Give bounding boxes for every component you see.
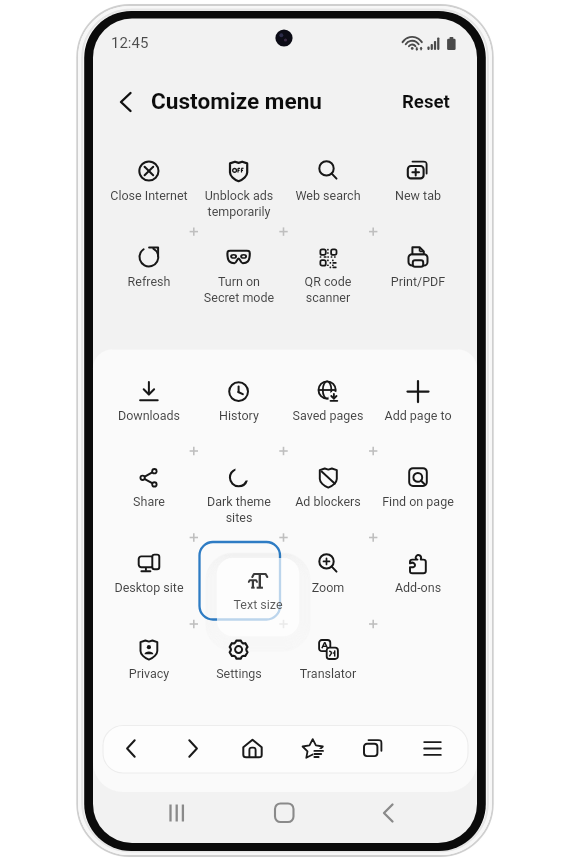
staticText: Refresh xyxy=(103,274,195,289)
button[interactable]: QR code scanner xyxy=(284,231,372,317)
staticText: Add page to xyxy=(372,408,464,423)
staticText: Add-ons xyxy=(372,580,464,595)
button[interactable]: Settings xyxy=(195,624,283,710)
button[interactable]: Translator xyxy=(284,624,372,710)
button[interactable]: Forward xyxy=(171,726,215,771)
button[interactable]: Recent apps xyxy=(152,791,196,835)
button[interactable]: Print/PDF xyxy=(374,231,462,317)
button[interactable]: Reset xyxy=(393,84,459,120)
button[interactable]: Dark theme sites xyxy=(195,452,283,538)
staticText: 12:45 xyxy=(111,34,149,52)
button[interactable]: Home xyxy=(231,726,275,771)
button[interactable]: Bookmarks xyxy=(291,726,335,771)
button[interactable]: More options xyxy=(411,726,455,771)
staticText: Settings xyxy=(193,666,285,681)
staticText: Saved pages xyxy=(282,408,374,423)
button[interactable]: Zoom xyxy=(284,538,372,624)
button[interactable]: History xyxy=(195,366,283,452)
button[interactable]: Share xyxy=(105,452,193,538)
staticText: Turn on Secret mode xyxy=(193,274,285,305)
button[interactable]: Find on page xyxy=(374,452,462,538)
button[interactable]: Close Internet xyxy=(105,145,193,231)
staticText: Downloads xyxy=(103,408,195,423)
staticText: Text size xyxy=(212,597,304,612)
button[interactable]: New tab xyxy=(374,145,462,231)
button[interactable]: Desktop site xyxy=(105,538,193,624)
button[interactable]: Unblock ads temporarily xyxy=(195,145,283,231)
staticText: Find on page xyxy=(372,494,464,509)
staticText: QR code scanner xyxy=(282,274,374,305)
button[interactable]: Home xyxy=(262,791,306,835)
staticText: Share xyxy=(103,494,195,509)
staticText: Zoom xyxy=(282,580,374,595)
button[interactable]: Add-ons xyxy=(374,538,462,624)
staticText: Reset xyxy=(402,91,450,113)
button[interactable]: Refresh xyxy=(105,231,193,317)
button[interactable]: Tabs xyxy=(351,726,395,771)
button[interactable]: Privacy xyxy=(105,624,193,710)
button[interactable]: Navigate up xyxy=(108,83,146,121)
staticText: Translator xyxy=(282,666,374,681)
staticText: Customize menu xyxy=(151,88,322,114)
staticText: New tab xyxy=(372,188,464,203)
staticText: History xyxy=(193,408,285,423)
button[interactable]: Web search xyxy=(284,145,372,231)
staticText: Privacy xyxy=(103,666,195,681)
staticText: Print/PDF xyxy=(372,274,464,289)
button[interactable]: Turn on Secret mode xyxy=(195,231,283,317)
button[interactable]: Text size xyxy=(217,558,299,636)
button[interactable]: Add page to xyxy=(374,366,462,452)
button[interactable]: Back xyxy=(366,791,410,835)
button[interactable]: Downloads xyxy=(105,366,193,452)
staticText: Unblock ads temporarily xyxy=(193,188,285,219)
staticText: Desktop site xyxy=(103,580,195,595)
staticText: Dark theme sites xyxy=(193,494,285,525)
button[interactable]: Ad blockers xyxy=(284,452,372,538)
button[interactable]: Back xyxy=(110,726,154,771)
button[interactable]: Saved pages xyxy=(284,366,372,452)
staticText: Close Internet xyxy=(103,188,195,203)
staticText: Ad blockers xyxy=(282,494,374,509)
staticText: Web search xyxy=(282,188,374,203)
